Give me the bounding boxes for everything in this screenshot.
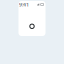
staticText: 9:41 bbox=[19, 1, 29, 8]
